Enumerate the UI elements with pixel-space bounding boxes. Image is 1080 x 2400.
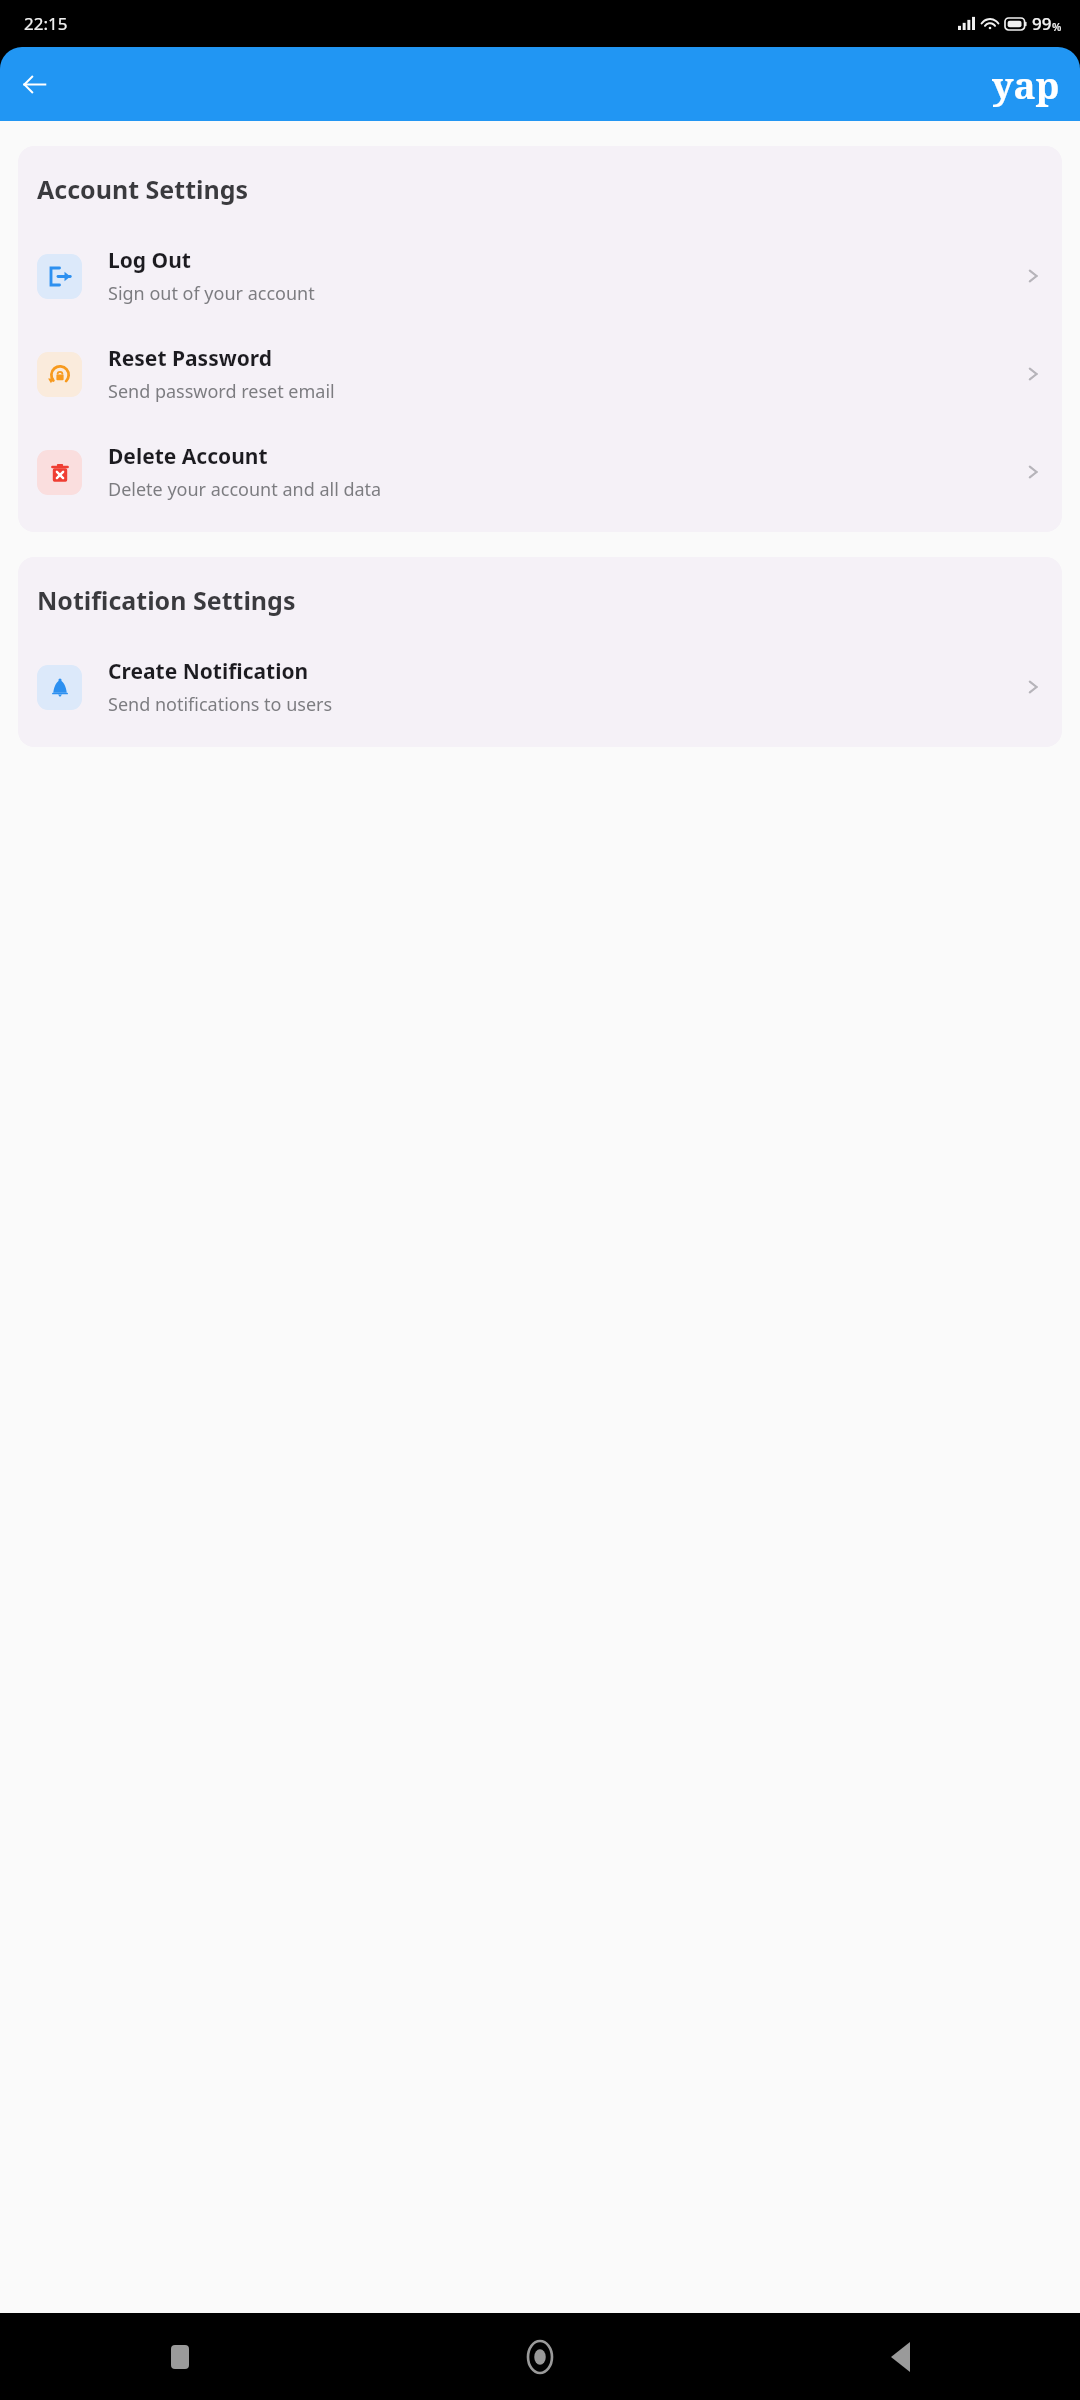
staticText: 99: [1032, 12, 1052, 35]
button[interactable]: Back: [869, 2326, 931, 2388]
staticText: %: [1052, 19, 1062, 34]
button[interactable]: Home: [509, 2326, 571, 2388]
button[interactable]: Back: [10, 60, 58, 108]
staticText: Create Notification: [108, 657, 309, 686]
button[interactable]: Reset Password: [37, 344, 1043, 404]
staticText: Send password reset email: [108, 379, 335, 404]
button[interactable]: Create Notification: [37, 657, 1043, 717]
button[interactable]: Recent apps: [149, 2326, 211, 2388]
staticText: Sign out of your account: [108, 281, 315, 306]
staticText: Reset Password: [108, 344, 273, 373]
staticText: 22:15: [24, 12, 68, 35]
button[interactable]: Log Out: [37, 246, 1043, 306]
staticText: Delete Account: [108, 442, 268, 471]
staticText: Send notifications to users: [108, 692, 333, 717]
staticText: yap: [992, 59, 1060, 109]
staticText: Account Settings: [37, 172, 249, 206]
staticText: Log Out: [108, 246, 191, 275]
staticText: Notification Settings: [37, 583, 296, 617]
staticText: Delete your account and all data: [108, 477, 382, 502]
button[interactable]: Delete Account: [37, 442, 1043, 502]
